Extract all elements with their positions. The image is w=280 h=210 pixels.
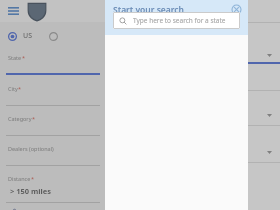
other: Expand [266, 52, 272, 58]
staticText: * [18, 85, 22, 92]
staticText: * [31, 175, 35, 182]
button[interactable]: Expand [248, 148, 280, 156]
button[interactable]: Type here to search for a state [113, 12, 240, 29]
staticText: City [8, 85, 18, 92]
staticText: Distance [8, 175, 31, 182]
other: Expand [266, 112, 272, 118]
staticText: Dealers (optional) [8, 145, 54, 152]
button[interactable]: Expand [248, 51, 280, 59]
staticText: Category [8, 115, 32, 122]
staticText: > 150 miles [10, 186, 52, 196]
staticText: Type here to search for a state [133, 16, 226, 25]
staticText: * [22, 54, 26, 61]
button[interactable]: Close [230, 3, 242, 15]
staticText: US [23, 31, 33, 41]
button[interactable]: Expand [248, 111, 280, 119]
button[interactable]: Menu [6, 4, 20, 18]
staticText: Start your search [113, 4, 185, 16]
staticText: * [32, 115, 36, 122]
button[interactable]: US [0, 28, 106, 44]
other: Expand [266, 149, 272, 155]
staticText: State [8, 54, 22, 61]
